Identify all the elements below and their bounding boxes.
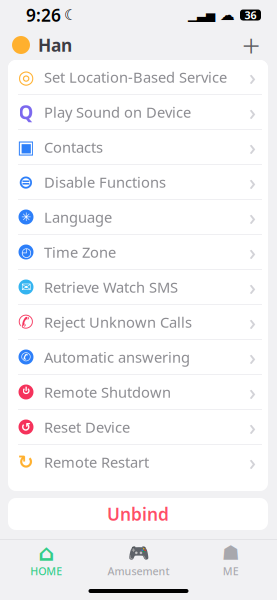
button[interactable]: ▣ xyxy=(8,130,268,165)
staticText: ◴ xyxy=(21,245,31,259)
staticText: Automatic answering xyxy=(44,347,190,367)
button[interactable]: ✆ xyxy=(8,305,268,340)
staticText: › xyxy=(249,98,256,126)
staticText: › xyxy=(249,273,256,301)
button[interactable]: Add xyxy=(233,28,269,62)
staticText: › xyxy=(249,413,256,441)
button[interactable]: Q xyxy=(8,95,268,130)
staticText: ☗ xyxy=(222,542,240,564)
button[interactable]: ✆ xyxy=(8,340,268,375)
staticText: Time Zone xyxy=(44,242,116,262)
staticText: Contacts xyxy=(44,137,103,157)
button[interactable]: ↻ xyxy=(8,445,268,480)
staticText: Reject Unknown Calls xyxy=(44,312,192,332)
staticText: › xyxy=(249,63,256,91)
staticText: ME xyxy=(223,564,239,578)
staticText: ⏻ xyxy=(22,385,29,399)
staticText: Disable Functions xyxy=(44,172,166,192)
staticText: ☾ xyxy=(64,7,77,23)
staticText: ✉ xyxy=(21,280,31,294)
staticText: Remote Restart xyxy=(44,452,149,472)
staticText: Han xyxy=(38,33,72,56)
button[interactable]: ⌂ xyxy=(0,540,92,582)
staticText: ⊜ xyxy=(18,171,34,193)
staticText: › xyxy=(249,343,256,371)
staticText: › xyxy=(249,378,256,406)
staticText: ⌂ xyxy=(38,540,54,566)
staticText: Reset Device xyxy=(44,417,130,437)
button[interactable]: ⊜ xyxy=(8,165,268,200)
staticText: Language xyxy=(44,207,112,227)
staticText: 🎮 xyxy=(127,543,149,563)
staticText: Retrieve Watch SMS xyxy=(44,277,178,297)
staticText: ☁ xyxy=(220,7,235,23)
staticText: › xyxy=(249,168,256,196)
staticText: Play Sound on Device xyxy=(44,102,191,122)
button[interactable]: ◴ xyxy=(8,235,268,270)
button[interactable]: ⏻ xyxy=(8,375,268,410)
staticText: Unbind xyxy=(107,502,169,525)
button[interactable]: ✳ xyxy=(8,200,268,235)
button[interactable]: ↺ xyxy=(8,410,268,445)
staticText: Q xyxy=(18,100,33,124)
staticText: › xyxy=(249,308,256,336)
staticText: ↺ xyxy=(21,420,31,434)
staticText: › xyxy=(249,238,256,266)
staticText: ✳ xyxy=(21,210,31,224)
staticText: ▁▃▅ xyxy=(188,8,215,22)
button[interactable]: ✉ xyxy=(8,270,268,305)
staticText: Set Location-Based Service xyxy=(44,67,227,87)
staticText: ✆ xyxy=(21,350,31,364)
staticText: Remote Shutdown xyxy=(44,382,171,402)
staticText: 9:26 xyxy=(26,3,61,26)
staticText: › xyxy=(249,448,256,476)
button[interactable]: ◎ xyxy=(8,60,268,95)
staticText: Amusement xyxy=(107,564,169,578)
staticText: ✆ xyxy=(18,311,34,333)
staticText: ↻ xyxy=(18,451,34,473)
staticText: ◎ xyxy=(18,66,34,88)
staticText: HOME xyxy=(30,564,62,578)
button[interactable]: Unbind xyxy=(8,498,268,530)
staticText: › xyxy=(249,133,256,161)
staticText: 36 xyxy=(244,8,256,22)
staticText: + xyxy=(242,24,260,66)
staticText: › xyxy=(249,203,256,231)
button[interactable]: 🎮 xyxy=(92,540,185,582)
staticText: ▣ xyxy=(17,136,35,158)
button[interactable]: ☗ xyxy=(185,540,277,582)
